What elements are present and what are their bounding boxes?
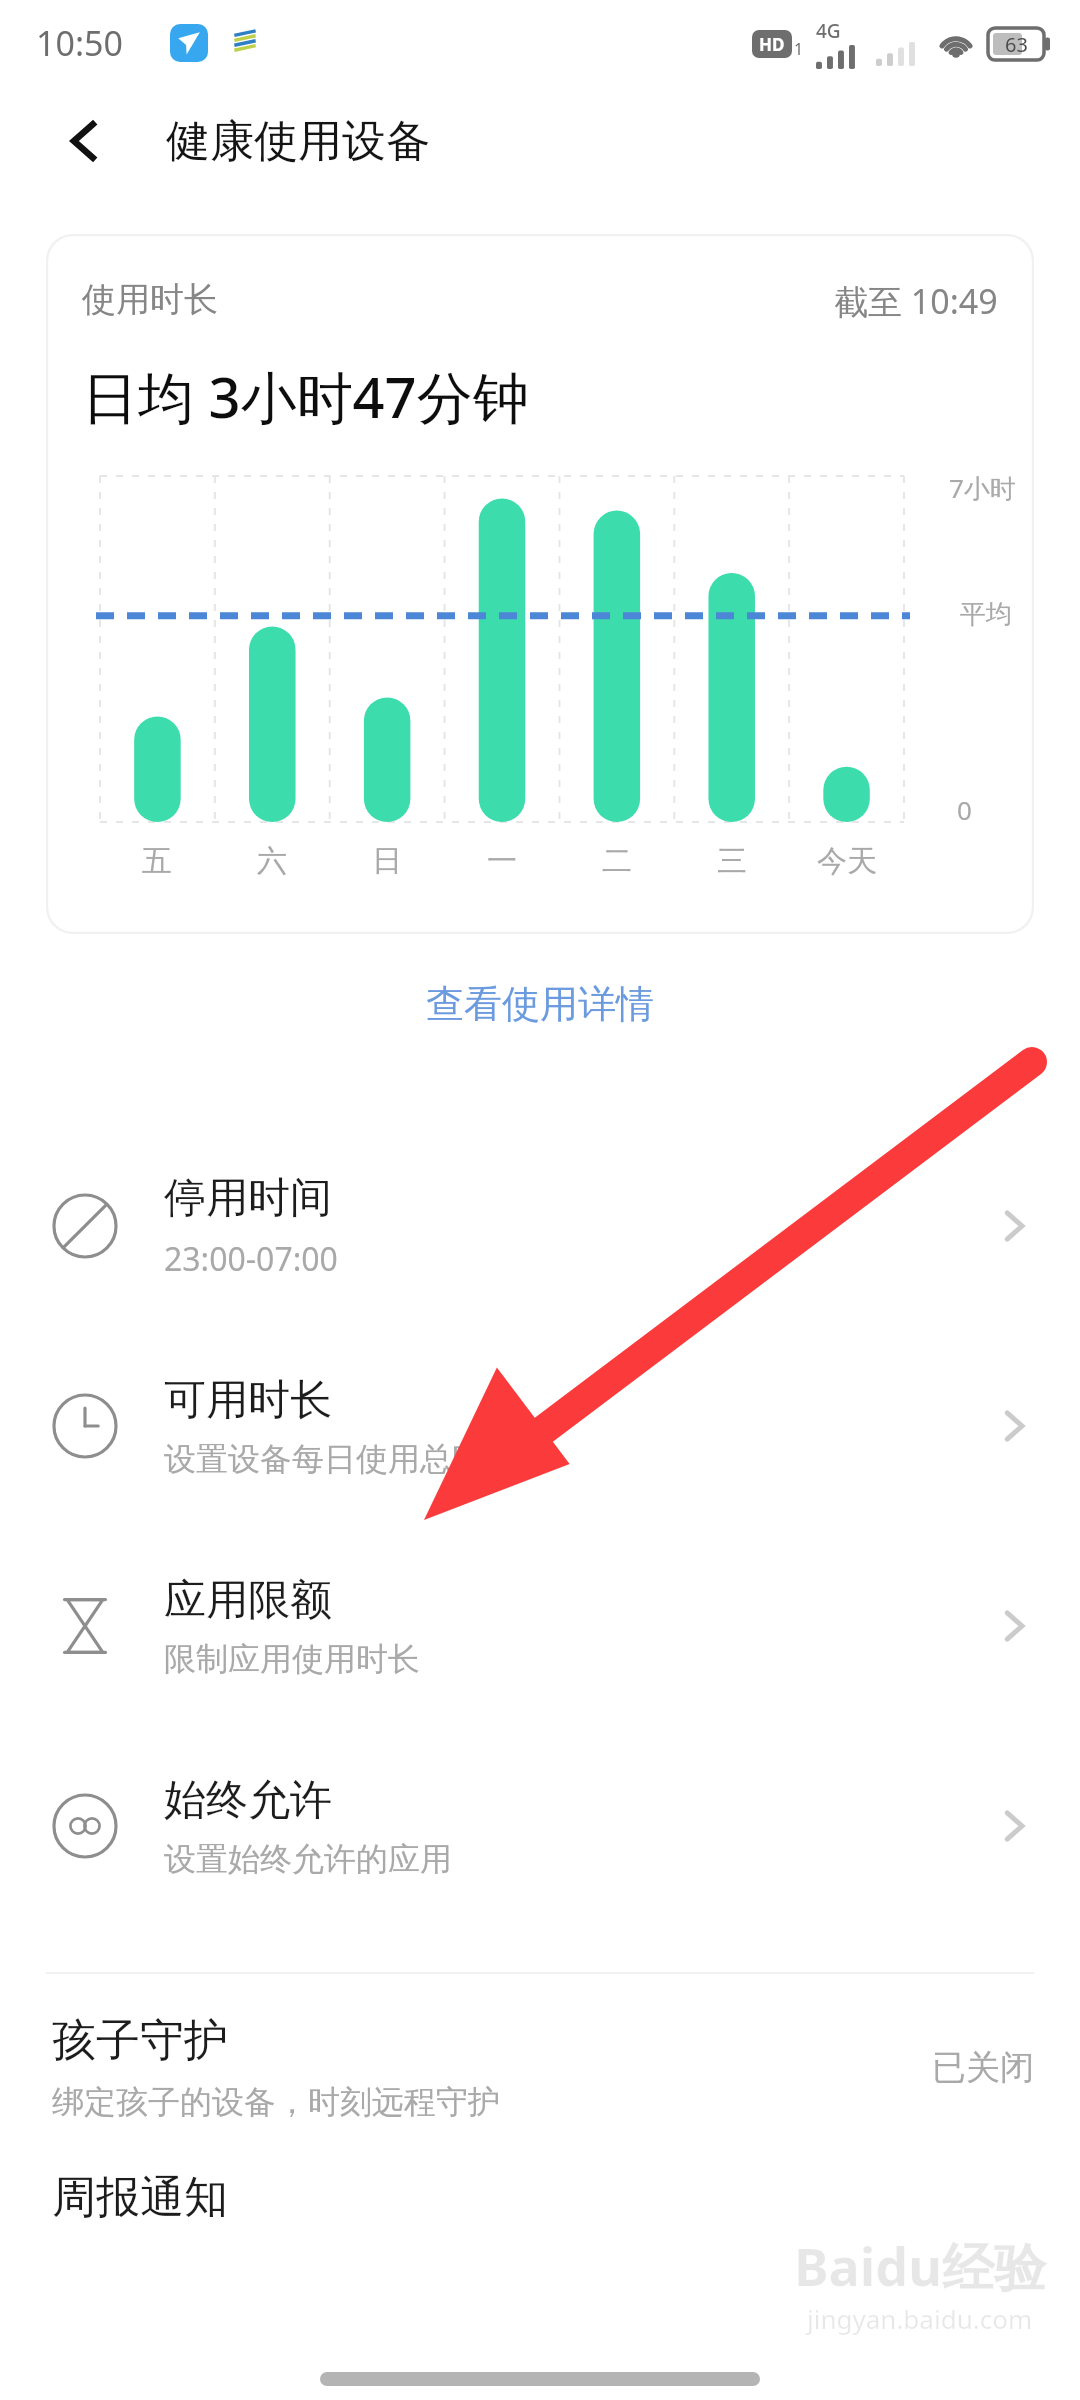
button[interactable]: 应用限额 bbox=[0, 1526, 1080, 1726]
staticText: 健康使用设备 bbox=[166, 114, 430, 169]
button[interactable]: 始终允许 bbox=[0, 1726, 1080, 1926]
staticText: 截至 10:49 bbox=[834, 278, 998, 324]
staticText: 周报通知 bbox=[52, 2170, 228, 2225]
staticText: 始终允许 bbox=[164, 1774, 332, 1827]
staticText: 可用时长 bbox=[164, 1374, 332, 1427]
staticText: 平均 bbox=[960, 598, 1012, 631]
staticText: 查看使用详情 bbox=[426, 980, 654, 1028]
button[interactable]: 孩子守护 bbox=[0, 1974, 1080, 2160]
staticText: 日 bbox=[372, 842, 402, 880]
staticText: 六 bbox=[257, 842, 287, 880]
staticText: 63 bbox=[1005, 31, 1028, 58]
button[interactable]: 查看使用详情 bbox=[396, 968, 684, 1040]
button[interactable]: Back bbox=[46, 103, 122, 179]
staticText: 0 bbox=[957, 792, 972, 827]
staticText: 7小时 bbox=[949, 470, 1016, 506]
staticText: 设置始终允许的应用 bbox=[164, 1839, 452, 1879]
staticText: 三 bbox=[717, 842, 747, 880]
button[interactable]: 可用时长 bbox=[0, 1326, 1080, 1526]
staticText: jingyan.baidu.com bbox=[807, 2301, 1033, 2336]
staticText: 停用时间 bbox=[164, 1172, 332, 1225]
staticText: 限制应用使用时长 bbox=[164, 1639, 420, 1679]
staticText: 孩子守护 bbox=[52, 2013, 228, 2068]
staticText: 二 bbox=[602, 842, 632, 880]
staticText: 1 bbox=[794, 38, 804, 60]
staticText: 一 bbox=[487, 842, 517, 880]
button[interactable]: 使用时长 bbox=[46, 234, 1034, 934]
staticText: 日均 3小时47分钟 bbox=[82, 358, 529, 434]
button[interactable]: 周报通知 bbox=[0, 2160, 1080, 2250]
staticText: 今天 bbox=[817, 842, 877, 880]
staticText: 绑定孩子的设备，时刻远程守护 bbox=[52, 2082, 500, 2122]
staticText: 10:50 bbox=[36, 20, 123, 66]
staticText: 设置设备每日使用总时长 bbox=[164, 1439, 516, 1479]
staticText: 23:00-07:00 bbox=[164, 1237, 338, 1281]
staticText: 使用时长 bbox=[82, 278, 218, 321]
staticText: Baidu经验 bbox=[794, 2230, 1046, 2301]
button[interactable]: 停用时间 bbox=[0, 1126, 1080, 1326]
staticText: HD bbox=[759, 33, 785, 56]
staticText: 4G bbox=[816, 18, 841, 44]
staticText: 五 bbox=[142, 842, 172, 880]
staticText: 应用限额 bbox=[164, 1574, 332, 1627]
staticText: 已关闭 bbox=[932, 2046, 1034, 2089]
